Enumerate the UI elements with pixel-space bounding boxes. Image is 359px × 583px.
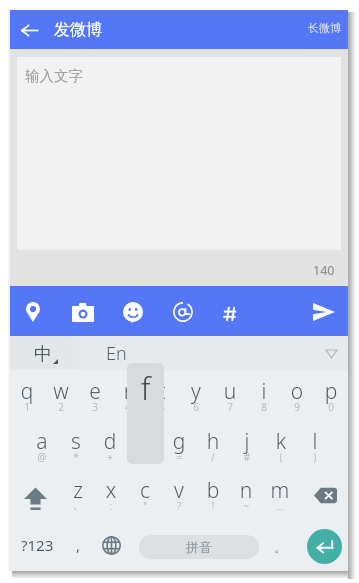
staticText: t [145, 377, 179, 406]
staticText: / [196, 450, 230, 464]
staticText: i [247, 377, 281, 406]
button[interactable]: Hide keyboard [315, 337, 347, 371]
button[interactable]: l [298, 423, 332, 469]
button[interactable]: k [264, 423, 298, 469]
button[interactable]: Send [302, 290, 346, 334]
staticText: c [128, 476, 162, 505]
staticText: @ [25, 450, 59, 464]
button[interactable]: q [10, 373, 44, 419]
button[interactable]: y [179, 373, 213, 419]
button[interactable]: Enter [307, 529, 342, 564]
button[interactable]: Back [12, 13, 46, 47]
button[interactable]: n [229, 472, 263, 518]
button[interactable]: 输入文字 [17, 57, 341, 250]
button[interactable]: Emoji [110, 289, 156, 335]
button[interactable]: d [93, 423, 127, 469]
staticText: 2 [44, 400, 78, 414]
button[interactable]: En [80, 336, 152, 370]
staticText: q [10, 377, 44, 406]
button[interactable]: Shift [15, 475, 55, 521]
button[interactable]: f [127, 423, 161, 469]
staticText: 输入文字 [25, 67, 83, 85]
button[interactable]: j [230, 423, 264, 469]
staticText: z [61, 476, 95, 505]
staticText: ?123 [21, 535, 54, 555]
staticText: 拼音 [186, 539, 212, 555]
staticText: ( [264, 450, 298, 464]
staticText: y [179, 377, 213, 406]
staticText: * [59, 450, 93, 464]
button[interactable]: Camera [60, 289, 106, 335]
button[interactable]: Backspace [303, 472, 347, 518]
button[interactable]: Language [95, 523, 127, 567]
button[interactable]: Mention [160, 289, 206, 335]
staticText: f [127, 367, 164, 409]
button[interactable]: Location [10, 289, 56, 335]
staticText: 8 [247, 400, 281, 414]
button[interactable]: m [263, 472, 297, 518]
staticText: ! [196, 499, 230, 513]
staticText: 4 [111, 400, 145, 414]
staticText: + [93, 450, 127, 464]
staticText: 发微博 [54, 20, 102, 40]
button[interactable]: 长微博 [300, 13, 348, 43]
button[interactable]: r [111, 373, 145, 419]
staticText: p [314, 377, 348, 406]
staticText: 长微博 [308, 21, 341, 35]
button[interactable]: , [63, 523, 93, 567]
staticText: l [298, 427, 332, 456]
staticText: 。 [274, 540, 286, 555]
staticText: g [162, 427, 196, 456]
staticText: 5 [145, 400, 179, 414]
button[interactable]: h [196, 423, 230, 469]
staticText: ? [162, 499, 196, 513]
button[interactable]: p [314, 373, 348, 419]
staticText: o [280, 377, 314, 406]
staticText: ~ [229, 499, 263, 513]
staticText: 9 [280, 400, 314, 414]
staticText: , [76, 535, 81, 555]
staticText: h [196, 427, 230, 456]
staticText: m [263, 476, 297, 505]
staticText: a [25, 427, 59, 456]
staticText: ) [298, 450, 332, 464]
button[interactable]: e [78, 373, 112, 419]
button[interactable]: z [61, 472, 95, 518]
staticText: En [106, 341, 127, 366]
staticText: b [196, 476, 230, 505]
button[interactable]: g [162, 423, 196, 469]
button[interactable]: u [213, 373, 247, 419]
staticText: 7 [213, 400, 247, 414]
button[interactable]: Topic [207, 291, 253, 337]
button[interactable]: v [162, 472, 196, 518]
button[interactable]: b [196, 472, 230, 518]
button[interactable]: o [280, 373, 314, 419]
button[interactable]: t [145, 373, 179, 419]
staticText: 中 [34, 343, 52, 366]
button[interactable]: w [44, 373, 78, 419]
button[interactable]: a [25, 423, 59, 469]
staticText: e [78, 377, 112, 406]
staticText: u [213, 377, 247, 406]
staticText: 140 [313, 262, 335, 279]
button[interactable]: c [128, 472, 162, 518]
staticText: k [264, 427, 298, 456]
button[interactable]: ?123 [14, 523, 60, 567]
button[interactable]: x [94, 472, 128, 518]
staticText: 1 [10, 400, 44, 414]
button[interactable]: 中 [12, 337, 80, 371]
staticText: 、 [61, 499, 95, 512]
staticText: = [162, 450, 196, 464]
staticText: j [230, 427, 264, 456]
staticText: r [111, 377, 145, 406]
button[interactable]: s [59, 423, 93, 469]
staticText: " [128, 499, 162, 513]
button[interactable]: i [247, 373, 281, 419]
staticText: s [59, 427, 93, 456]
button[interactable]: 拼音 [139, 535, 259, 559]
staticText: d [93, 427, 127, 456]
button[interactable]: 。 [265, 525, 295, 569]
